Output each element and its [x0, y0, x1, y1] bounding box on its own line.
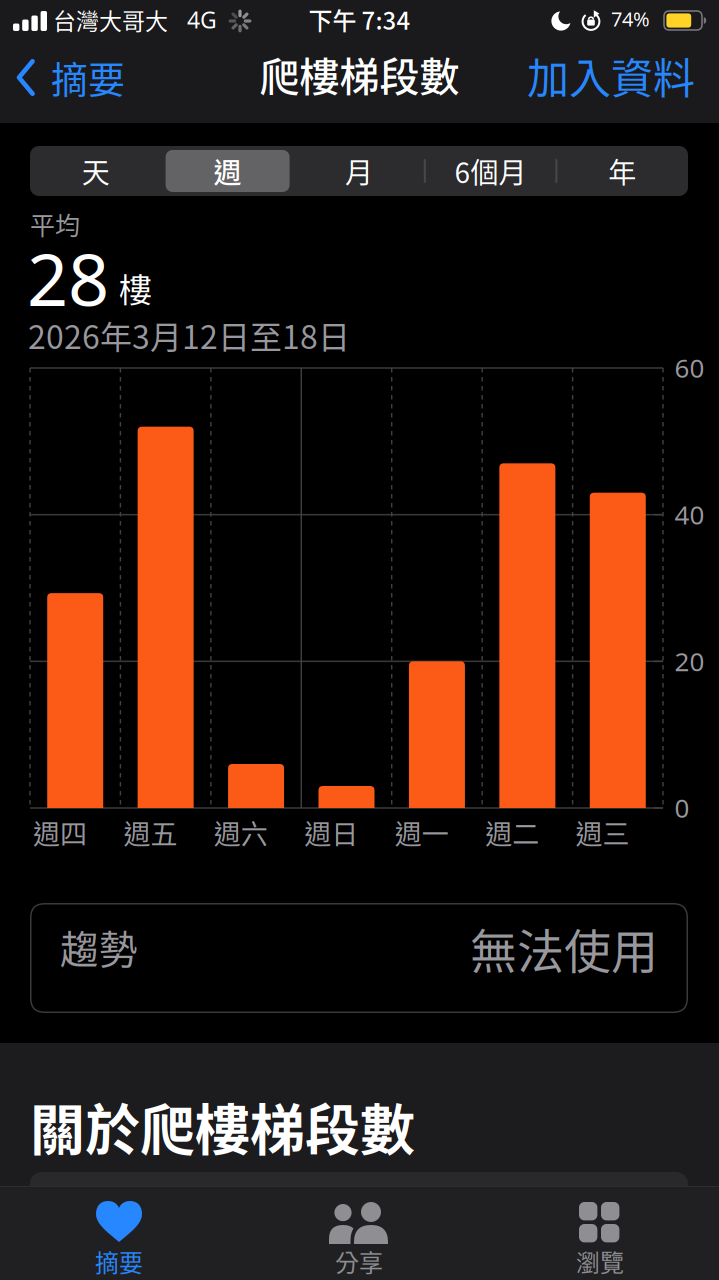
staticText: 週五 [123, 813, 177, 852]
staticText: 分享 [335, 1244, 383, 1279]
staticText: 月 [345, 151, 373, 191]
staticText: 4G [187, 4, 217, 35]
staticText: 週二 [485, 813, 539, 852]
staticText: 20 [675, 643, 705, 679]
staticText: 摘要 [51, 51, 125, 105]
staticText: 瀏覽 [576, 1244, 624, 1279]
staticText: 40 [675, 497, 705, 532]
staticText: 週日 [304, 813, 358, 852]
staticText: 趨勢 [60, 919, 138, 975]
button[interactable]: 6個月 [425, 146, 556, 196]
button[interactable]: 年 [556, 146, 688, 196]
button[interactable]: 趨勢 [30, 903, 688, 1013]
staticText: 摘要 [95, 1244, 143, 1279]
staticText: 下午 7:34 [308, 2, 410, 37]
staticText: 加入資料 [527, 45, 695, 106]
staticText: 2026年3月12日至18日 [28, 312, 350, 358]
button[interactable]: 摘要 [16, 46, 128, 106]
staticText: 週一 [395, 813, 449, 852]
staticText: 平均 [30, 206, 80, 242]
staticText: 台灣大哥大 [53, 3, 168, 36]
staticText: 28 [27, 229, 109, 327]
staticText: 關於爬樓梯段數 [30, 1086, 415, 1166]
staticText: 週 [213, 151, 241, 191]
staticText: 年 [608, 151, 636, 191]
staticText: 0 [675, 790, 690, 825]
button[interactable]: 加入資料 [527, 45, 695, 106]
staticText: 樓 [119, 264, 152, 312]
staticText: 60 [675, 350, 705, 385]
staticText: 週六 [214, 813, 268, 852]
staticText: 爬樓梯段數 [259, 45, 459, 103]
button[interactable]: 天 [30, 146, 162, 196]
staticText: 週四 [33, 813, 87, 852]
staticText: 6個月 [455, 151, 527, 191]
staticText: 週三 [576, 813, 630, 852]
staticText: 無法使用 [470, 914, 658, 982]
staticText: 天 [82, 151, 110, 191]
button[interactable]: 瀏覽 [520, 1196, 680, 1280]
button[interactable]: 週 [162, 146, 293, 196]
button[interactable]: 摘要 [39, 1196, 199, 1280]
button[interactable]: 月 [293, 146, 425, 196]
button[interactable]: 分享 [279, 1196, 439, 1280]
staticText: 74% [611, 5, 650, 32]
